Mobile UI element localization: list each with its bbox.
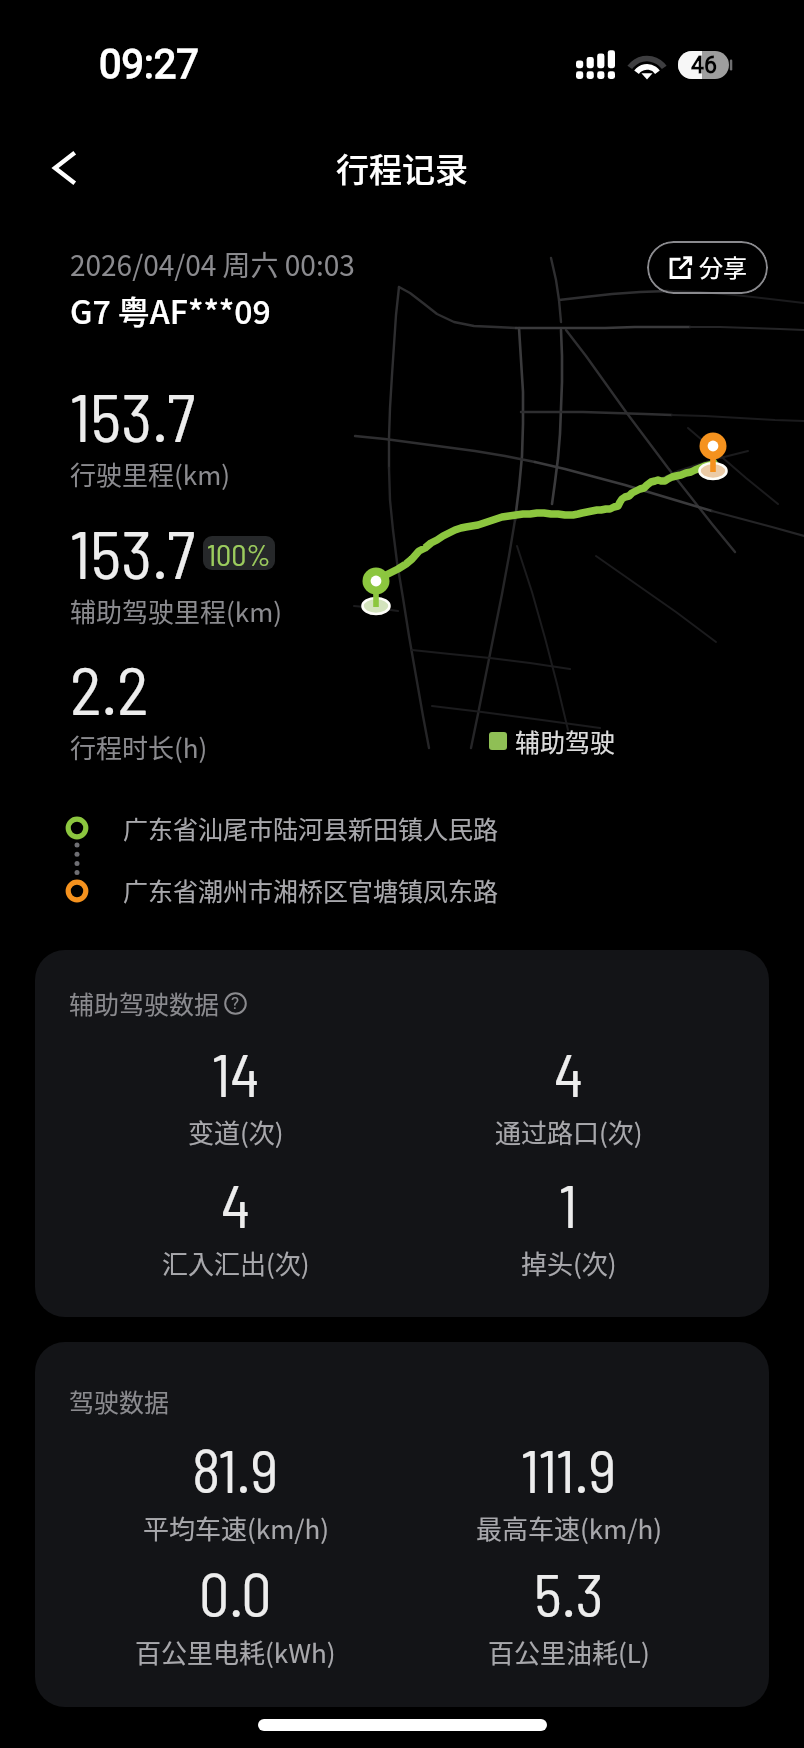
staticText: G7 粤AF***09 [70,287,271,333]
staticText: 辅助驾驶里程(km) [70,592,283,630]
staticText: 通过路口(次) [495,1113,643,1151]
staticText: 辅助驾驶 [515,723,616,759]
staticText: 5.3 [534,1557,604,1629]
staticText: 分享 [699,249,747,284]
staticText: 辅助驾驶数据 [69,985,220,1021]
staticText: 153.7 [70,512,196,592]
staticText: 驾驶数据 [69,1383,170,1419]
staticText: 153.7 [70,375,196,455]
staticText: 汇入汇出(次) [162,1244,310,1282]
staticText: 广东省潮州市湘桥区官塘镇凤东路 [123,872,499,908]
button[interactable]: 分享 [647,241,768,294]
button[interactable]: Back [33,131,93,191]
staticText: 平均车速(km/h) [143,1509,329,1547]
staticText: 掉头(次) [521,1244,617,1282]
staticText: ? [231,993,240,1013]
staticText: 广东省汕尾市陆河县新田镇人民路 [123,810,499,846]
button[interactable]: Trip route map [344,300,804,710]
staticText: 4 [554,1037,583,1109]
staticText: 1 [559,1168,578,1240]
staticText: 百公里电耗(kWh) [135,1633,336,1671]
staticText: 46 [691,52,717,79]
staticText: 0.0 [199,1557,272,1629]
staticText: 最高车速(km/h) [476,1509,662,1547]
staticText: 行程记录 [336,144,468,192]
staticText: 2026/04/04 周六 00:03 [70,244,355,285]
staticText: 100% [207,536,271,570]
staticText: 14 [212,1037,260,1109]
staticText: 09:27 [99,41,199,88]
staticText: 4 [221,1168,250,1240]
staticText: 行驶里程(km) [70,455,231,493]
staticText: 变道(次) [188,1113,284,1151]
staticText: 111.9 [521,1433,617,1505]
staticText: 2.2 [70,648,149,728]
staticText: 百公里油耗(L) [488,1633,650,1671]
staticText: 行程时长(h) [70,728,208,766]
staticText: 81.9 [192,1433,279,1505]
